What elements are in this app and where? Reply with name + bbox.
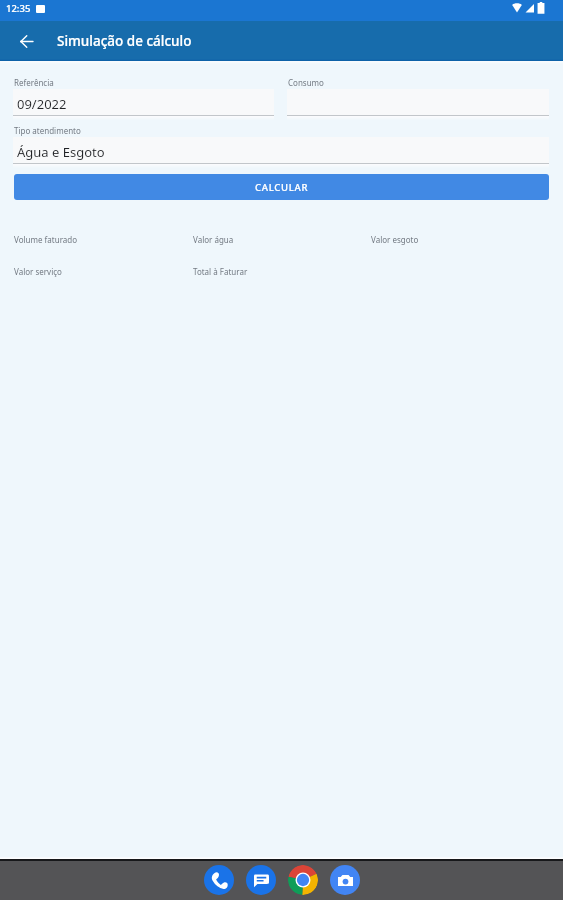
staticText: Valor água (193, 234, 234, 245)
button[interactable]: Valor serviço (14, 266, 193, 277)
button[interactable]: Valor água (193, 234, 371, 245)
staticText: Simulação de cálculo (57, 32, 192, 50)
staticText: Consumo (288, 77, 324, 88)
button[interactable]: 09/2022 (13, 89, 274, 115)
staticText: 09/2022 (17, 95, 67, 113)
staticText: Volume faturado (14, 234, 78, 245)
button[interactable]: Phone (204, 865, 234, 895)
staticText: CALCULAR (255, 181, 309, 194)
staticText: Valor serviço (14, 266, 62, 277)
staticText: 12:35 (6, 2, 31, 15)
staticText: Valor esgoto (371, 234, 419, 245)
button[interactable]: Camera (330, 865, 360, 895)
button[interactable]: CALCULAR (14, 174, 549, 200)
button[interactable]: Back (8, 23, 44, 59)
staticText: Água e Esgoto (17, 143, 105, 161)
button[interactable]: Valor esgoto (371, 234, 549, 245)
button[interactable]: Messages (246, 865, 276, 895)
staticText: Referência (14, 77, 54, 88)
button[interactable]: Total à Faturar (193, 266, 371, 277)
button[interactable]: Água e Esgoto (13, 137, 549, 163)
button[interactable]: Chrome (288, 865, 318, 895)
staticText: Tipo atendimento (14, 125, 81, 136)
staticText: Total à Faturar (193, 266, 248, 277)
button[interactable]: Volume faturado (14, 234, 193, 245)
